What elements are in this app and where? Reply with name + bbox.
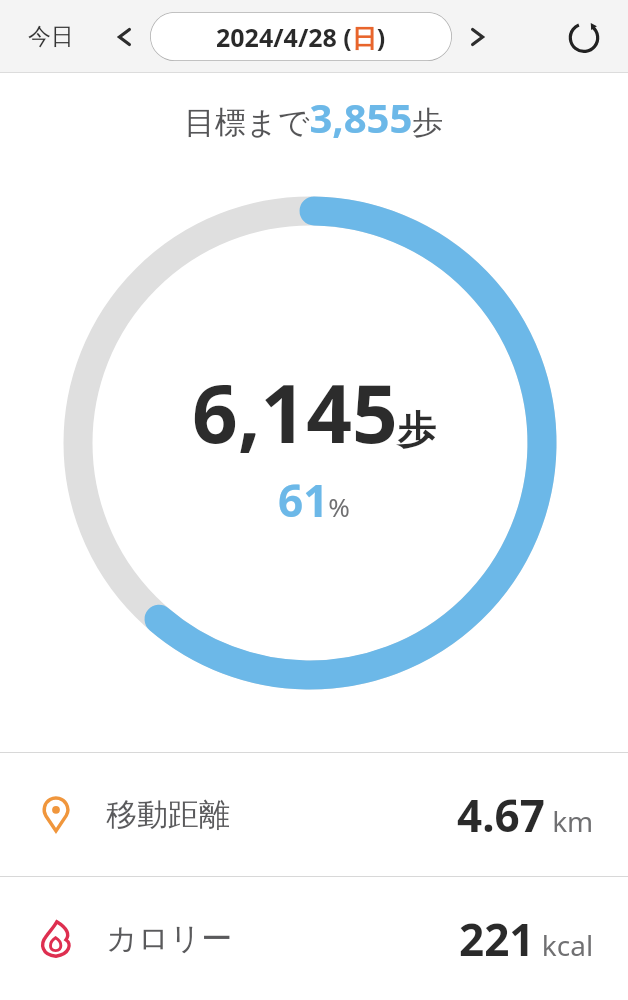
staticText: 61% (278, 470, 350, 530)
button[interactable]: 移動距離 (0, 753, 628, 876)
button[interactable]: 翌日 (456, 15, 500, 59)
staticText: 移動距離 (106, 795, 230, 834)
staticText: カロリー (106, 919, 233, 958)
button[interactable]: カロリー (0, 877, 628, 1000)
button[interactable]: 今日 (20, 16, 82, 57)
staticText: 目標まで3,855歩 (184, 90, 444, 144)
staticText: 今日 (28, 22, 74, 51)
button[interactable]: 前日 (102, 15, 146, 59)
staticText: 4.67 km (457, 785, 594, 845)
staticText: 6,145歩 (192, 357, 436, 466)
button[interactable]: 更新 (558, 11, 610, 63)
button[interactable]: 2024/4/28 (日) (150, 12, 452, 61)
staticText: 221 kcal (459, 909, 594, 969)
staticText: 2024/4/28 (日) (216, 20, 386, 54)
